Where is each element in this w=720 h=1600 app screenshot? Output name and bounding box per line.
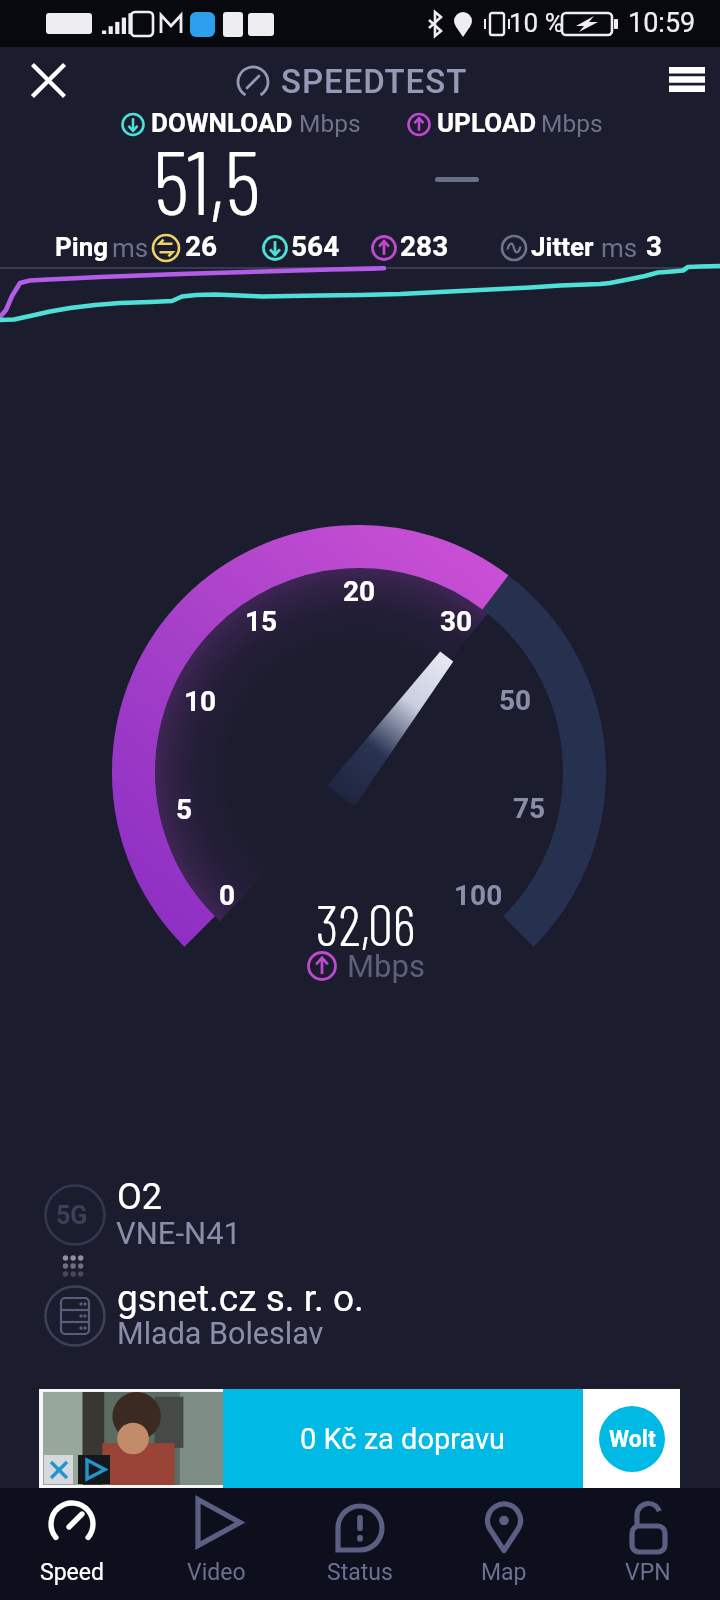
staticText: 100 [454,879,503,912]
staticText: VPN [625,1559,671,1586]
staticText: Mlada Boleslav [117,1316,324,1352]
button[interactable]: Map [432,1488,576,1600]
button[interactable]: gsnet.cz s. r. o. [30,1271,590,1363]
staticText: 20 [343,575,376,608]
button[interactable]: Menu [655,47,719,111]
staticText: Wolt [609,1426,656,1453]
staticText: Ping [55,232,109,262]
staticText: 30 [440,605,473,638]
staticText: 15 [245,605,278,638]
staticText: 50 [499,684,532,717]
staticText: Status [327,1559,393,1586]
staticText: 32,06 [316,890,416,957]
staticText: Mbps [541,109,603,138]
staticText: 75 [513,792,546,825]
staticText: 51,5 [153,125,261,233]
staticText: Mbps [347,948,425,984]
staticText: 5G [56,1201,88,1230]
staticText: Mbps [299,109,361,138]
staticText: 3 [646,230,663,263]
staticText: 0 [219,879,236,912]
button[interactable]: 0 Kč za dopravu [39,1389,680,1488]
button[interactable]: Video [144,1488,288,1600]
staticText: SPEEDTEST [281,62,468,101]
staticText: ms [112,233,149,263]
staticText: 10 % [509,8,564,38]
staticText: 0 Kč za dopravu [300,1422,506,1456]
staticText: Speed [40,1559,104,1586]
staticText: 5 [176,793,193,826]
button[interactable]: Status [288,1488,432,1600]
staticText: 10:59 [628,7,696,39]
staticText: VNE-N41 [116,1215,241,1251]
staticText: O2 [117,1176,162,1218]
staticText: UPLOAD [437,108,537,138]
button[interactable]: Speed [0,1488,144,1600]
staticText: gsnet.cz s. r. o. [117,1277,364,1320]
button[interactable]: Close [17,49,79,111]
staticText: Jitter [531,232,594,262]
staticText: 564 [291,230,340,263]
staticText: 283 [400,230,449,263]
staticText: 10 [184,685,217,718]
button[interactable]: 5G [30,1170,590,1262]
staticText: ms [601,233,638,263]
staticText: Video [187,1559,246,1586]
staticText: Map [481,1559,527,1586]
staticText: DOWNLOAD [151,108,293,138]
staticText: 26 [185,230,218,263]
button[interactable]: VPN [576,1488,720,1600]
